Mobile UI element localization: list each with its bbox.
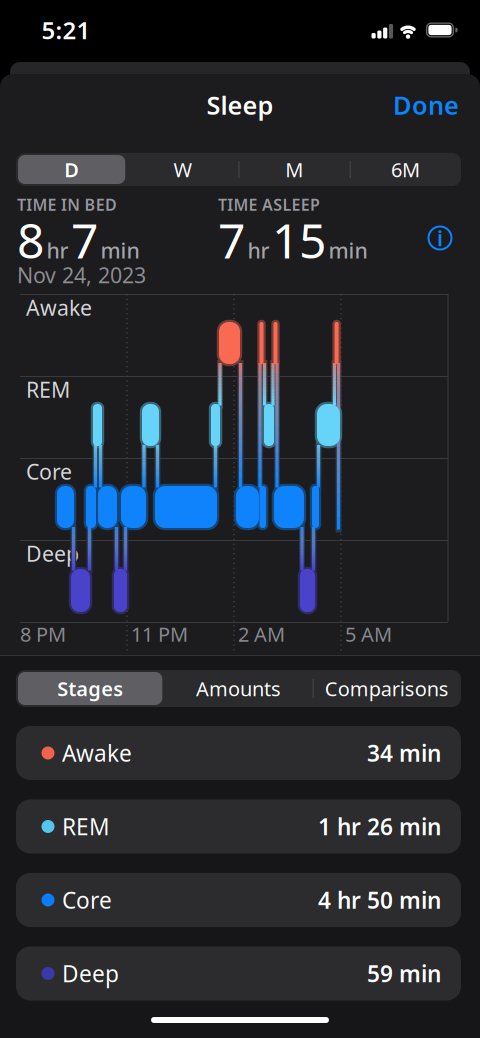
- button[interactable]: More information: [424, 222, 456, 254]
- staticText: 15: [272, 208, 326, 272]
- staticText: TIME ASLEEP: [218, 194, 320, 215]
- staticText: Deep: [62, 958, 119, 988]
- staticText: Comparisons: [325, 675, 449, 702]
- staticText: 34 min: [367, 738, 441, 768]
- staticText: 7: [218, 208, 245, 272]
- staticText: 59 min: [367, 958, 441, 988]
- staticText: Stages: [57, 675, 123, 702]
- staticText: Amounts: [196, 675, 281, 702]
- button[interactable]: Done: [369, 90, 459, 120]
- staticText: 5 AM: [345, 621, 392, 647]
- staticText: 1 hr 26 min: [318, 811, 441, 841]
- staticText: 8 PM: [20, 621, 66, 647]
- staticText: 4 hr 50 min: [318, 885, 441, 915]
- staticText: M: [285, 156, 303, 183]
- staticText: 8: [17, 208, 44, 272]
- button[interactable]: 6M: [350, 153, 461, 186]
- staticText: 2 AM: [238, 621, 285, 647]
- staticText: 6M: [391, 156, 420, 183]
- staticText: min: [328, 236, 367, 264]
- staticText: min: [100, 236, 139, 264]
- staticText: i: [437, 224, 443, 252]
- staticText: REM: [62, 811, 110, 841]
- button[interactable]: Comparisons: [313, 670, 461, 707]
- staticText: TIME IN BED: [17, 194, 117, 215]
- staticText: 11 PM: [131, 621, 188, 647]
- staticText: hr: [46, 236, 68, 264]
- staticText: REM: [26, 375, 70, 404]
- staticText: Deep: [26, 539, 79, 568]
- staticText: Done: [393, 88, 459, 122]
- button[interactable]: Stages: [16, 670, 164, 707]
- staticText: 7: [71, 208, 98, 272]
- button[interactable]: D: [16, 153, 127, 186]
- staticText: Nov 24, 2023: [17, 261, 146, 289]
- staticText: Awake: [26, 293, 92, 322]
- staticText: Awake: [62, 738, 132, 768]
- button[interactable]: W: [127, 153, 238, 186]
- staticText: 5:21: [41, 14, 90, 46]
- staticText: Core: [62, 885, 112, 915]
- button[interactable]: Amounts: [164, 670, 313, 707]
- staticText: W: [173, 156, 192, 183]
- staticText: hr: [247, 236, 269, 264]
- staticText: Sleep: [206, 88, 273, 122]
- staticText: D: [64, 156, 79, 183]
- staticText: Core: [26, 457, 72, 486]
- button[interactable]: M: [238, 153, 350, 186]
